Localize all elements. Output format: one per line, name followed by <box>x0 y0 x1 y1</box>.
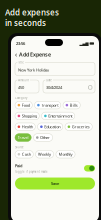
button[interactable]: Education <box>37 123 63 130</box>
staticText: New York Holiday <box>18 67 49 72</box>
staticText: Category <box>15 96 27 100</box>
staticText: Bills <box>70 102 78 108</box>
button[interactable]: ‹ <box>15 50 95 59</box>
button[interactable]: Monthly <box>56 150 75 158</box>
button[interactable]: Paid toggle <box>84 165 95 171</box>
staticText: Add Expense <box>19 51 51 58</box>
staticText: Title <box>18 61 24 64</box>
staticText: 30/4/2024 <box>46 85 62 90</box>
staticText: Monthly <box>58 152 72 157</box>
staticText: 23:56 <box>16 41 25 46</box>
staticText: Health <box>22 124 33 129</box>
staticText: Amount <box>18 78 29 82</box>
staticText: Other <box>40 135 50 140</box>
button[interactable]: Entertainment <box>41 112 75 120</box>
staticText: Source <box>15 145 24 149</box>
button[interactable]: Cash <box>15 150 33 158</box>
staticText: Education <box>44 124 60 129</box>
button[interactable]: Other <box>33 134 53 141</box>
button[interactable]: Groceries <box>65 123 92 130</box>
staticText: ▂▄▆ <box>79 41 88 46</box>
staticText: Transport <box>41 102 58 108</box>
staticText: Add expenses <box>5 7 59 18</box>
button[interactable]: Weekly <box>35 150 54 158</box>
staticText: Entertainment <box>48 113 72 119</box>
staticText: Shopping <box>22 113 37 119</box>
staticText: in seconds <box>5 18 46 28</box>
staticText: Weekly <box>38 152 51 157</box>
button[interactable]: Transport <box>34 101 61 109</box>
button[interactable]: Food <box>15 101 32 109</box>
staticText: Date <box>46 78 52 82</box>
staticText: Save <box>51 181 59 186</box>
staticText: Paid <box>15 163 23 168</box>
staticText: ‹ <box>15 50 17 59</box>
button[interactable]: Travel <box>15 134 31 141</box>
button[interactable]: Bills <box>63 101 80 109</box>
staticText: Food <box>22 102 30 108</box>
staticText: Cash <box>22 152 31 157</box>
button[interactable]: Save <box>15 177 95 189</box>
staticText: Groceries <box>72 124 90 129</box>
staticText: 450 <box>18 85 24 90</box>
staticText: Toggle if payment made <box>15 170 48 173</box>
button[interactable]: Shopping <box>15 112 39 120</box>
button[interactable]: Health <box>15 123 35 130</box>
staticText: Travel <box>18 135 29 140</box>
